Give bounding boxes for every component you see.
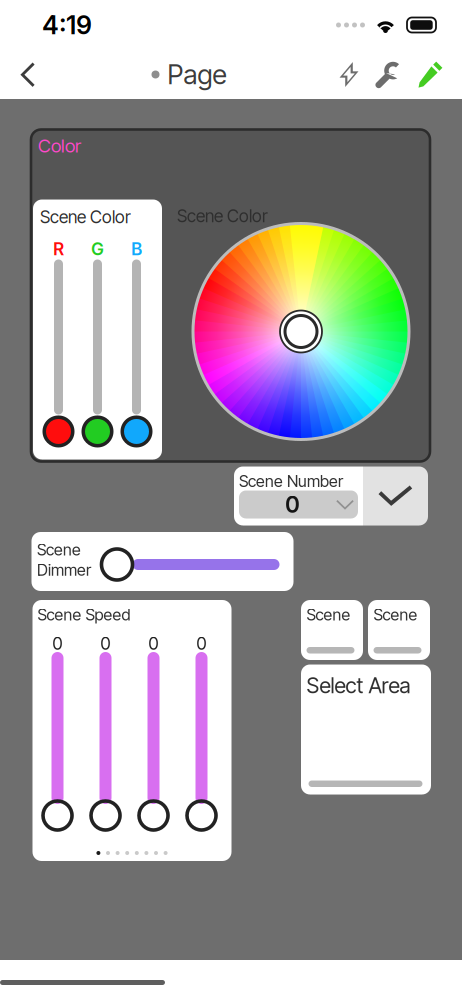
staticText: 0 bbox=[196, 633, 206, 654]
staticText: Scene Color bbox=[177, 205, 268, 226]
button[interactable]: Scene bbox=[31, 532, 293, 591]
button[interactable]: Edit bbox=[410, 51, 451, 98]
button[interactable]: Back bbox=[8, 51, 47, 98]
button[interactable]: Confirm scene number bbox=[363, 466, 428, 525]
staticText: Scene bbox=[373, 605, 417, 624]
button[interactable]: Scene Speed bbox=[32, 600, 231, 861]
staticText: 0 bbox=[148, 633, 158, 654]
staticText: Scene Number bbox=[239, 471, 343, 491]
staticText: 4:19 bbox=[42, 10, 92, 40]
staticText: Scene bbox=[37, 540, 81, 559]
button[interactable]: Scene bbox=[301, 600, 363, 660]
staticText: G bbox=[91, 238, 104, 259]
staticText: R bbox=[53, 238, 64, 259]
staticText: 0 bbox=[100, 633, 110, 654]
staticText: 0 bbox=[285, 491, 300, 518]
staticText: Select Area bbox=[306, 672, 410, 698]
staticText: Dimmer bbox=[37, 560, 91, 580]
staticText: Scene bbox=[306, 605, 350, 624]
button[interactable]: Select Area bbox=[301, 664, 431, 794]
staticText: Scene Speed bbox=[37, 605, 130, 624]
staticText: 0 bbox=[52, 633, 62, 654]
button[interactable]: Scene Color bbox=[169, 198, 433, 460]
button[interactable]: Flash bbox=[331, 51, 367, 97]
staticText: Scene Color bbox=[40, 206, 131, 227]
button[interactable]: Scene Color bbox=[33, 199, 162, 459]
button[interactable]: 0 bbox=[239, 490, 358, 518]
button[interactable]: Scene bbox=[368, 600, 430, 660]
staticText: Color bbox=[38, 134, 81, 157]
button[interactable]: Scene Number bbox=[234, 466, 428, 525]
staticText: Page bbox=[167, 58, 226, 91]
button[interactable]: Settings bbox=[367, 51, 410, 98]
staticText: B bbox=[131, 238, 142, 259]
